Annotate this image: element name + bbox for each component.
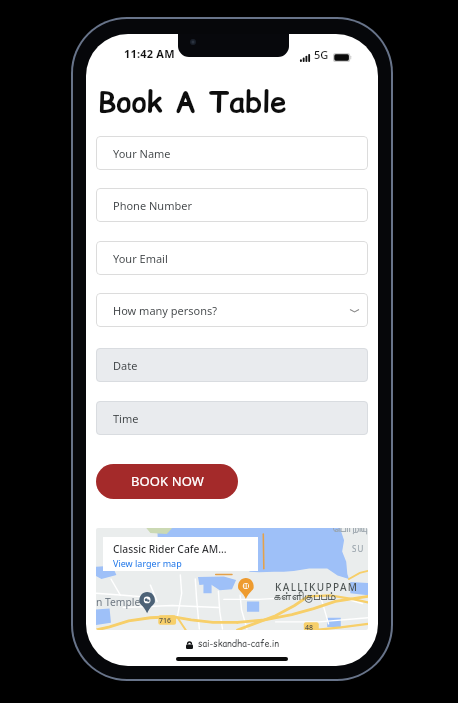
staticText: 5G <box>314 47 329 62</box>
button[interactable]: Your Name <box>96 136 368 170</box>
staticText: 11:42 AM <box>124 46 175 61</box>
staticText: How many persons? <box>113 303 218 318</box>
staticText: கள்ளிகுப்பம் <box>273 590 336 602</box>
staticText: Classic Rider Cafe AM… <box>113 542 227 556</box>
button[interactable]: Date <box>96 348 368 382</box>
staticText: Your Name <box>113 146 171 161</box>
button[interactable]: How many persons? <box>96 293 368 327</box>
staticText: Time <box>113 411 139 426</box>
staticText: BOOK NOW <box>131 472 204 490</box>
staticText: Your Email <box>113 251 168 266</box>
staticText: Phone Number <box>113 198 192 213</box>
staticText: KALLIKUPPAM <box>275 580 359 594</box>
button[interactable]: Phone Number <box>96 188 368 222</box>
button[interactable]: BOOK NOW <box>96 464 238 499</box>
staticText: 716 <box>159 616 172 626</box>
staticText: SU <box>352 543 365 554</box>
staticText: View larger map <box>113 557 182 569</box>
staticText: Book A Table <box>98 81 287 121</box>
staticText: 48 <box>305 623 314 630</box>
button[interactable]: Your Email <box>96 241 368 275</box>
button[interactable]: Time <box>96 401 368 435</box>
staticText: பொறியு <box>332 528 368 534</box>
button[interactable]: Classic Rider Cafe AM… <box>103 537 258 571</box>
button[interactable]: Map <box>96 528 368 630</box>
staticText: sai-skandha-cafe.in <box>198 638 279 651</box>
staticText: n Temple <box>96 595 141 609</box>
staticText: Date <box>113 358 138 373</box>
